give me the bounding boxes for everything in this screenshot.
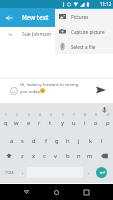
button[interactable]: 8 [79,112,90,129]
staticText: n [77,152,81,160]
button[interactable]: ?123 [0,164,19,180]
staticText: 5 [50,113,52,117]
staticText: i [84,119,86,127]
staticText: 4 [39,113,41,117]
staticText: x [32,152,36,160]
button[interactable]: f [40,133,51,148]
staticText: q [4,119,8,127]
button[interactable]: 1 [0,112,11,129]
staticText: g [55,137,59,145]
staticText: c [43,152,46,160]
staticText: 11:12 [100,1,112,7]
staticText: Sue Johnson [22,31,52,38]
button[interactable]: 3 [23,112,34,129]
staticText: p [106,119,110,127]
button[interactable]: Home [48,184,64,200]
button[interactable]: m [84,148,95,163]
button[interactable]: 9 [90,112,101,129]
staticText: o [94,119,98,127]
button[interactable]: h [62,133,73,148]
staticText: you today [20,88,40,94]
staticText: , [22,169,24,176]
button[interactable]: Enter [96,167,107,178]
button[interactable]: c [39,148,50,163]
button[interactable]: 2 [11,112,22,129]
staticText: m [87,152,93,160]
staticText: l [101,137,103,145]
button[interactable]: l [96,133,107,148]
button[interactable]: z [17,148,28,163]
staticText: Pictures [71,14,89,20]
staticText: 0 [107,113,109,117]
staticText: Hi, looking forward to seeing [20,81,79,87]
button[interactable]: v [50,148,61,163]
staticText: a [10,137,14,145]
staticText: Capture picture [71,29,105,35]
staticText: 8 [84,113,86,117]
staticText: j [78,137,80,145]
staticText: ?123 [5,170,14,175]
staticText: z [21,152,24,160]
button[interactable]: j [73,133,84,148]
button[interactable]: Back [1,10,17,26]
staticText: u [72,119,76,127]
button[interactable]: Voice input [99,104,110,115]
staticText: r [38,119,41,127]
staticText: k [89,137,93,145]
button[interactable]: k [85,133,96,148]
button[interactable]: 7 [68,112,79,129]
button[interactable]: 5 [45,112,56,129]
staticText: f [45,137,47,145]
staticText: 3 [28,113,30,117]
staticText: e [27,119,31,127]
staticText: s [21,137,24,145]
button[interactable]: d [28,133,39,148]
button[interactable]: 0 [102,112,113,129]
staticText: 9 [95,113,97,117]
staticText: b [66,152,70,160]
staticText: 1 [5,113,7,117]
button[interactable]: Shift [0,148,17,163]
button[interactable]: To [0,27,113,41]
button[interactable]: 4 [34,112,45,129]
staticText: v [54,152,57,160]
staticText: d [32,137,36,145]
staticText: h [66,137,70,145]
button[interactable]: , [18,164,27,180]
staticText: 7 [73,113,75,117]
button[interactable]: n [73,148,84,163]
staticText: Select a file [71,44,96,50]
button[interactable]: b [62,148,73,163]
button[interactable]: Backspace [96,148,113,163]
staticText: New text [22,13,49,21]
staticText: y [61,119,64,127]
staticText: w [14,119,19,127]
staticText: t [49,119,52,127]
button[interactable]: Capture picture [55,24,113,39]
button[interactable]: Select a file [55,39,113,54]
button[interactable]: . [84,164,93,180]
button[interactable]: a [6,133,17,148]
staticText: 6 [62,113,64,117]
staticText: To [8,32,13,38]
button[interactable]: g [51,133,62,148]
staticText: . [88,169,90,176]
button[interactable]: 6 [57,112,68,129]
button[interactable]: x [28,148,39,163]
button[interactable]: Send [93,82,108,97]
button[interactable]: Pictures [55,9,113,24]
button[interactable]: Emoji [8,85,19,96]
button[interactable]: Recents [78,184,94,200]
button[interactable]: s [17,133,28,148]
button[interactable]: Back [18,184,34,200]
staticText: 2 [16,113,18,117]
